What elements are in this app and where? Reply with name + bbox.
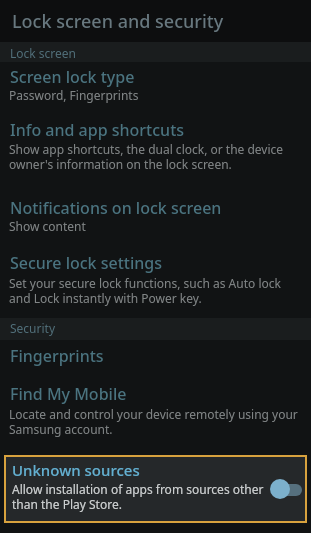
staticText: Allow installation of apps from sources … xyxy=(12,481,264,512)
button[interactable] xyxy=(0,340,311,378)
staticText: Locate and control your device remotely … xyxy=(9,406,298,437)
button[interactable] xyxy=(0,62,311,112)
staticText: Notifications on lock screen xyxy=(10,197,222,219)
staticText: Find My Mobile xyxy=(10,383,127,405)
staticText: Show content xyxy=(9,218,86,234)
staticText: Secure lock settings xyxy=(10,252,162,274)
staticText: Security xyxy=(10,320,56,336)
button[interactable] xyxy=(270,479,290,499)
button[interactable] xyxy=(0,246,311,312)
staticText: Lock screen and security xyxy=(12,9,224,34)
staticText: Info and app shortcuts xyxy=(10,119,185,141)
staticText: Set your secure lock functions, such as … xyxy=(9,275,281,306)
staticText: Show app shortcuts, the dual clock, or t… xyxy=(9,141,284,172)
button[interactable] xyxy=(0,194,311,246)
staticText: Fingerprints xyxy=(10,345,104,367)
staticText: Password, Fingerprints xyxy=(9,87,139,103)
button[interactable]: Unknown sources xyxy=(4,455,307,523)
button[interactable] xyxy=(0,378,311,440)
staticText: Lock screen xyxy=(10,45,77,61)
staticText: Unknown sources xyxy=(12,460,140,480)
staticText: Screen lock type xyxy=(10,66,135,88)
button[interactable] xyxy=(0,112,311,194)
